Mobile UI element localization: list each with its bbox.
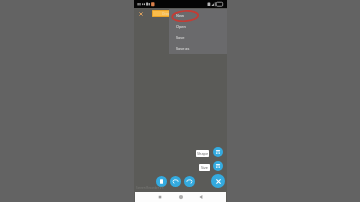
staticText: Screen Recorder V5	[136, 186, 164, 190]
button[interactable]: Size	[199, 164, 210, 171]
button[interactable]: Draw	[152, 10, 172, 17]
button[interactable]: Undo	[170, 176, 181, 187]
staticText: Save as	[176, 46, 190, 51]
staticText: Save	[176, 35, 185, 40]
button[interactable]: Save as	[169, 43, 227, 54]
button[interactable]: Close	[136, 9, 146, 19]
staticText: Draw	[162, 11, 171, 16]
button[interactable]: Save	[169, 32, 227, 43]
staticText: Open	[176, 24, 186, 29]
button[interactable]: Delete	[156, 176, 167, 187]
button[interactable]: Close menu	[211, 174, 225, 188]
button[interactable]: Size	[213, 161, 223, 171]
staticText: Size	[201, 165, 208, 170]
staticText: Shape	[197, 151, 209, 156]
button[interactable]: Shape	[196, 150, 209, 157]
button[interactable]: Open	[169, 21, 227, 32]
button[interactable]: New	[169, 10, 227, 21]
staticText: New	[176, 13, 184, 18]
button[interactable]: Shape	[213, 147, 223, 157]
button[interactable]: Redo	[184, 176, 195, 187]
